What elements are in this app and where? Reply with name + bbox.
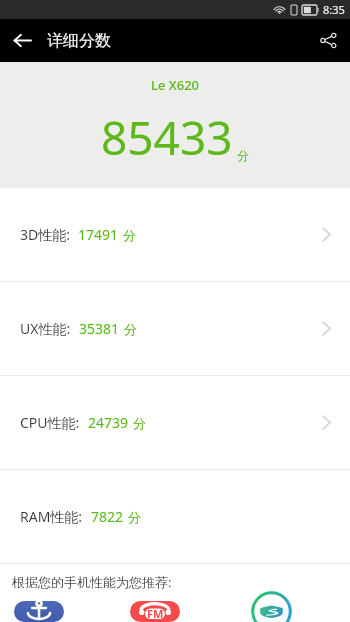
staticText: FM — [147, 606, 164, 621]
staticText: CPU性能: — [20, 413, 80, 432]
staticText: 8:35 — [323, 2, 345, 17]
button[interactable]: CPU性能: — [0, 376, 350, 469]
staticText: 3D性能: — [20, 225, 70, 244]
staticText: Le X620 — [151, 76, 200, 94]
button[interactable]: Share — [306, 19, 350, 62]
staticText: 分 — [128, 509, 141, 525]
staticText: 85433 — [101, 106, 233, 169]
staticText: 根据您的手机性能为您推荐: — [12, 573, 172, 591]
staticText: 24739 — [88, 413, 129, 432]
staticText: RAM性能: — [20, 507, 83, 526]
staticText: UX性能: — [20, 319, 71, 338]
staticText: 17491 — [78, 225, 119, 244]
staticText: 分 — [133, 415, 146, 431]
button[interactable]: Back — [0, 19, 44, 62]
staticText: 分 — [237, 148, 249, 163]
button[interactable]: App: 安全卫士 — [246, 601, 296, 622]
button[interactable]: App: 海量 — [14, 601, 64, 622]
staticText: 分 — [123, 227, 136, 243]
button[interactable]: App: FM 电台 — [130, 601, 180, 622]
button[interactable]: 3D性能: — [0, 188, 350, 281]
button[interactable]: UX性能: — [0, 282, 350, 375]
staticText: 详细分数 — [47, 31, 111, 51]
staticText: 7822 — [91, 507, 124, 526]
staticText: 35381 — [79, 319, 120, 338]
button[interactable]: RAM性能: — [0, 470, 350, 563]
staticText: 分 — [124, 321, 137, 337]
